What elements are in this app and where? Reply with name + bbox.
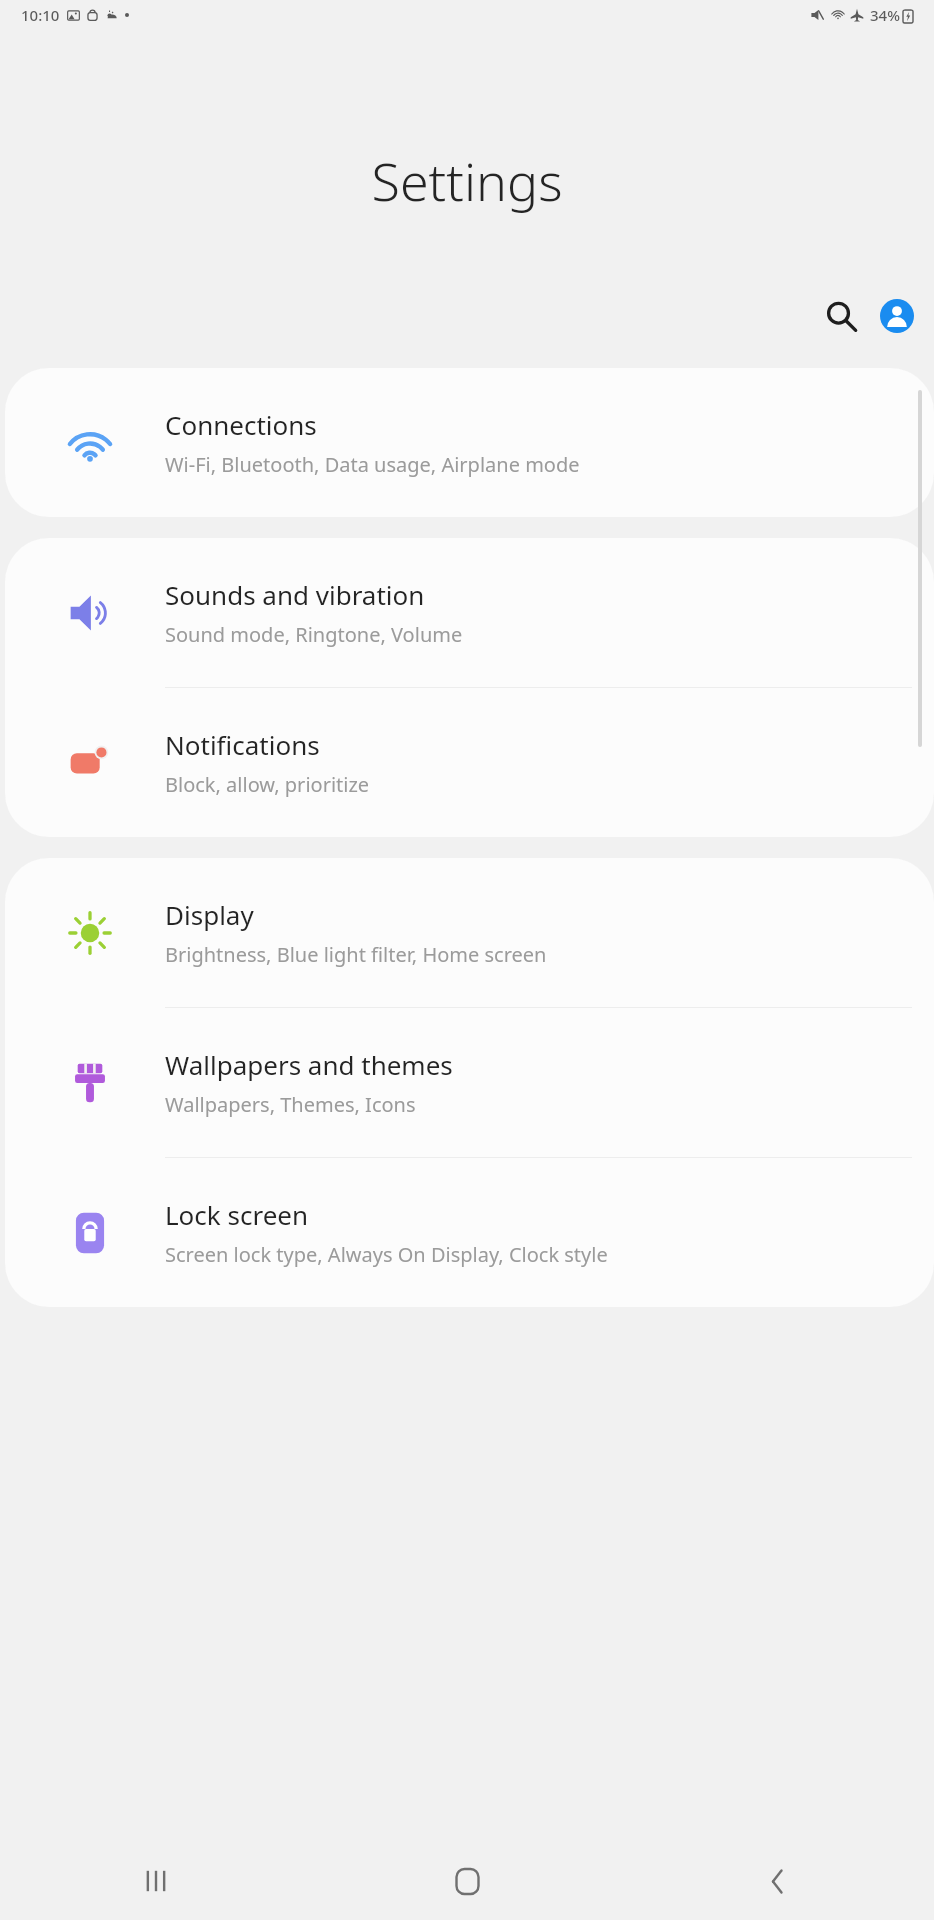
button[interactable]: Notifications — [5, 688, 934, 837]
staticText: Lock screen — [165, 1197, 309, 1232]
staticText: Wi-Fi, Bluetooth, Data usage, Airplane m… — [165, 451, 580, 478]
staticText: Connections — [165, 407, 317, 442]
button[interactable]: Back — [623, 1842, 934, 1920]
button[interactable]: Sounds and vibration — [5, 538, 934, 687]
staticText: Settings — [0, 145, 934, 216]
button[interactable]: Home — [312, 1842, 623, 1920]
button[interactable]: Account — [880, 299, 914, 333]
button[interactable]: Search — [817, 292, 865, 340]
staticText: Block, allow, prioritize — [165, 771, 370, 798]
staticText: Wallpapers and themes — [165, 1047, 453, 1082]
button[interactable]: Connections — [5, 368, 934, 517]
staticText: 34% — [870, 5, 900, 25]
button[interactable]: Lock screen — [5, 1158, 934, 1307]
staticText: 10:10 — [21, 5, 60, 25]
staticText: Sounds and vibration — [165, 577, 425, 612]
staticText: Sound mode, Ringtone, Volume — [165, 621, 463, 648]
button[interactable]: Display — [5, 858, 934, 1007]
staticText: Notifications — [165, 727, 320, 762]
staticText: Display — [165, 897, 254, 932]
button[interactable]: Wallpapers and themes — [5, 1008, 934, 1157]
staticText: Wallpapers, Themes, Icons — [165, 1091, 416, 1118]
staticText: Screen lock type, Always On Display, Clo… — [165, 1241, 608, 1268]
button[interactable]: Recents — [0, 1842, 312, 1920]
staticText: Brightness, Blue light filter, Home scre… — [165, 941, 547, 968]
